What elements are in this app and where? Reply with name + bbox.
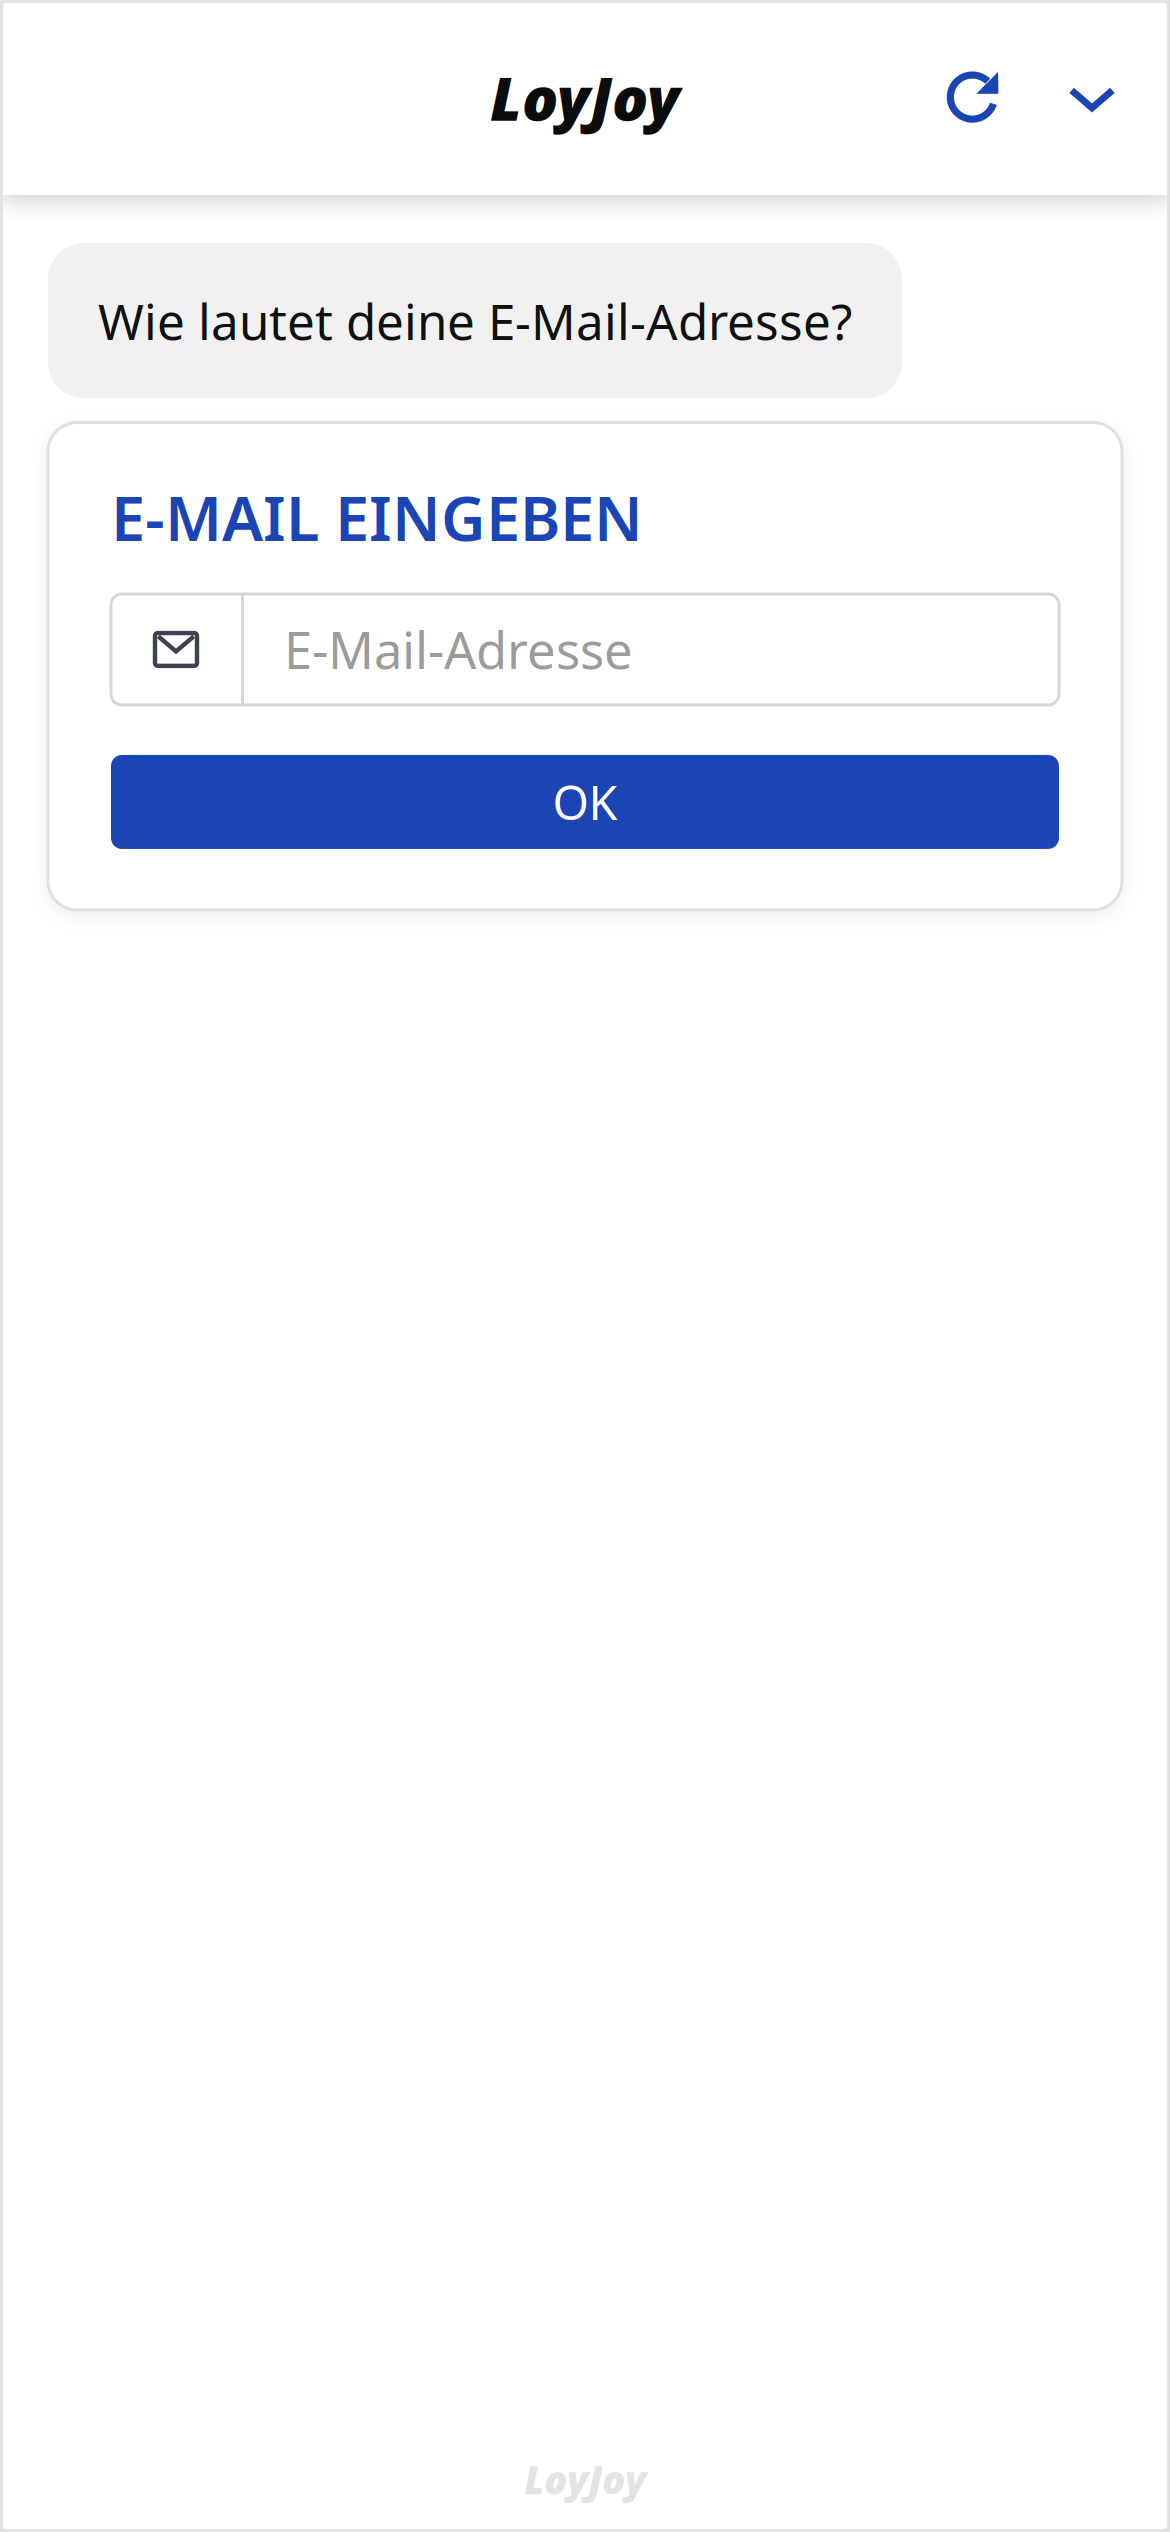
button[interactable]: OK (111, 755, 1059, 849)
staticText: E-MAIL EINGEBEN (111, 476, 643, 558)
staticText: LoyJoy (524, 2454, 646, 2505)
staticText: Wie lautet deine E-Mail-Adresse? (98, 288, 852, 353)
staticText: LoyJoy (490, 58, 680, 137)
staticText: E-Mail-Adresse (284, 616, 633, 683)
staticText: OK (552, 771, 617, 833)
button[interactable]: Chat schließen (1036, 41, 1148, 153)
button[interactable]: Neu laden (924, 41, 1036, 153)
button[interactable]: E-Mail-Adresse (111, 594, 1059, 705)
